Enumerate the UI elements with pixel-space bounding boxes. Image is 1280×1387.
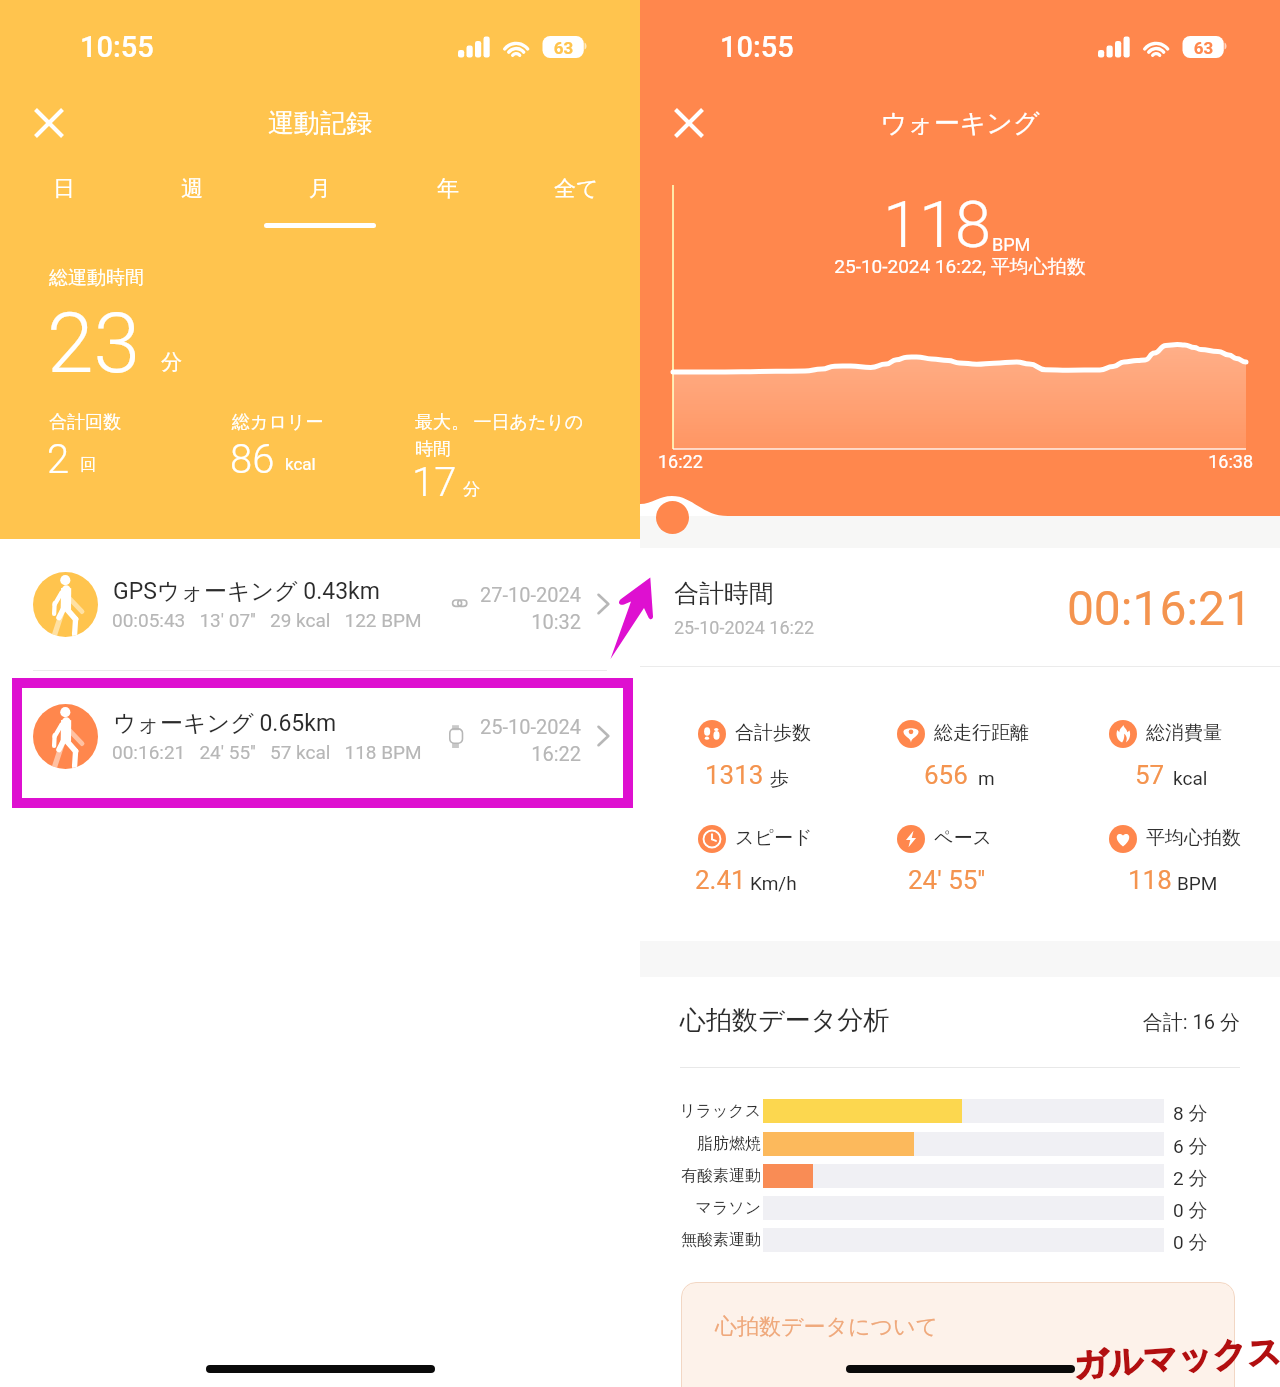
button[interactable]: 週	[128, 170, 256, 230]
button[interactable]: 月	[256, 170, 384, 230]
staticText: Km/h	[750, 872, 797, 894]
staticText: m	[978, 767, 995, 789]
staticText: 最大。 一日あたりの 時間	[415, 411, 584, 461]
staticText: 合計回数	[49, 411, 121, 434]
staticText: 2	[47, 436, 70, 483]
staticText: リラックス	[646, 1101, 761, 1121]
staticText: 656	[924, 760, 968, 790]
staticText: 86	[230, 436, 275, 483]
button[interactable]: 全て	[512, 170, 640, 230]
staticText: 総走行距離	[934, 721, 1029, 745]
staticText: 57	[1135, 760, 1165, 790]
staticText: 10:55	[80, 30, 154, 64]
staticText: 10:32	[420, 610, 581, 633]
staticText: 年	[437, 175, 459, 203]
staticText: 有酸素運動	[646, 1166, 761, 1186]
staticText: 10:55	[720, 30, 794, 64]
staticText: BPM	[992, 234, 1031, 255]
staticText: 17	[412, 459, 457, 506]
staticText: 23	[47, 294, 141, 392]
staticText: 1313	[705, 760, 764, 790]
staticText: 63	[543, 38, 584, 58]
staticText: 総カロリー	[232, 411, 324, 434]
staticText: 回	[80, 455, 96, 475]
staticText: 心拍数データ分析	[680, 1004, 890, 1037]
staticText: 16:22	[420, 742, 581, 765]
button[interactable]: Close	[25, 99, 73, 147]
staticText: 総消費量	[1146, 721, 1222, 745]
button[interactable]: ウォーキング 0.65km	[0, 671, 640, 802]
staticText: kcal	[285, 454, 316, 474]
button[interactable]: 日	[0, 170, 128, 230]
button[interactable]: Close	[665, 99, 713, 147]
staticText: 心拍数データについて	[715, 1313, 939, 1341]
staticText: 歩	[770, 767, 789, 791]
staticText: 全て	[554, 175, 599, 203]
staticText: 合計歩数	[735, 721, 811, 745]
staticText: 脂肪燃焼	[646, 1134, 761, 1154]
button[interactable]: GPSウォーキング 0.43km	[0, 539, 640, 670]
staticText: 0 分	[1173, 1199, 1208, 1223]
staticText: 25-10-2024 16:22, 平均心拍数	[640, 255, 1280, 279]
staticText: 平均心拍数	[1146, 826, 1241, 850]
staticText: マラソン	[646, 1198, 761, 1218]
staticText: ガルマックス	[1072, 1329, 1280, 1387]
staticText: 分	[161, 349, 182, 375]
staticText: 00:05:43 13' 07'' 29 kcal 122 BPM	[112, 609, 422, 631]
staticText: 16:22	[658, 451, 703, 472]
staticText: 運動記録	[0, 107, 640, 140]
staticText: 無酸素運動	[646, 1230, 761, 1250]
staticText: スピード	[735, 826, 813, 850]
staticText: 月	[309, 175, 331, 203]
staticText: ウォーキング	[640, 107, 1280, 140]
staticText: 25-10-2024	[420, 715, 581, 738]
staticText: 63	[1183, 38, 1224, 58]
staticText: 118	[883, 187, 992, 263]
staticText: 総運動時間	[49, 266, 144, 290]
button[interactable]: 年	[384, 170, 512, 230]
staticText: BPM	[1177, 872, 1218, 894]
staticText: 27-10-2024	[420, 583, 581, 606]
staticText: 6 分	[1173, 1135, 1208, 1159]
staticText: 8 分	[1173, 1102, 1208, 1126]
staticText: 0 分	[1173, 1231, 1208, 1255]
staticText: ペース	[934, 826, 992, 850]
staticText: kcal	[1173, 767, 1208, 789]
staticText: 週	[181, 175, 203, 203]
staticText: 00:16:21 24' 55'' 57 kcal 118 BPM	[112, 741, 422, 763]
staticText: GPSウォーキング 0.43km	[113, 577, 380, 606]
staticText: 合計時間	[674, 578, 774, 609]
staticText: 118	[1128, 865, 1172, 895]
staticText: 16:38	[640, 451, 1253, 472]
staticText: 分	[463, 479, 480, 500]
staticText: 24' 55''	[908, 865, 986, 895]
staticText: 合計: 16 分	[640, 1010, 1240, 1035]
staticText: 2 分	[1173, 1167, 1208, 1191]
staticText: ウォーキング 0.65km	[113, 709, 337, 738]
staticText: 2.41	[695, 865, 746, 895]
staticText: 00:16:21	[640, 580, 1252, 636]
staticText: 25-10-2024 16:22	[674, 617, 815, 638]
staticText: 日	[53, 175, 75, 203]
